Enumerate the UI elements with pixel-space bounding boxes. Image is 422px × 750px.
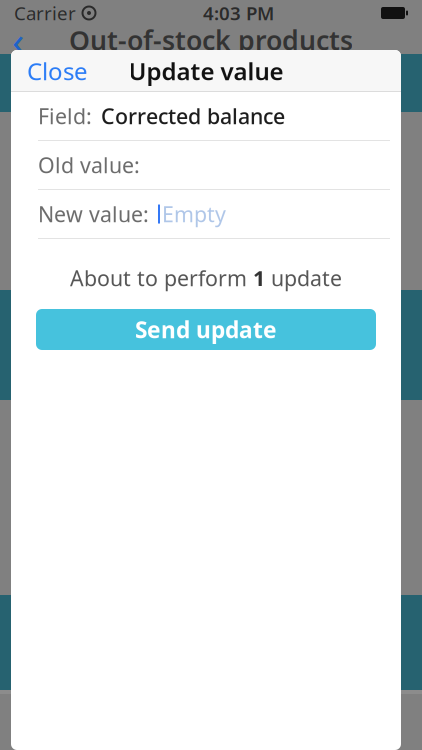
staticText: Corrected balance bbox=[101, 102, 285, 130]
staticText: ‹ bbox=[12, 13, 24, 66]
staticText: Send update bbox=[135, 314, 277, 344]
staticText: Close bbox=[27, 55, 88, 87]
button[interactable]: Close bbox=[11, 50, 104, 92]
staticText: Field: bbox=[38, 102, 92, 130]
button[interactable]: Back bbox=[0, 25, 36, 55]
button[interactable]: Send update bbox=[36, 309, 376, 350]
staticText: Old value: bbox=[38, 151, 140, 179]
staticText: update bbox=[265, 264, 342, 292]
staticText: Empty bbox=[162, 200, 226, 228]
staticText: Update value bbox=[128, 55, 283, 87]
staticText: Out-of-stock products bbox=[69, 22, 353, 58]
staticText: Carrier bbox=[14, 1, 76, 25]
staticText: About to perform bbox=[70, 264, 253, 292]
staticText: 4:03 PM bbox=[203, 1, 274, 25]
staticText: 1 bbox=[253, 264, 265, 292]
button[interactable]: New value: bbox=[27, 190, 401, 238]
staticText: New value: bbox=[38, 200, 149, 228]
